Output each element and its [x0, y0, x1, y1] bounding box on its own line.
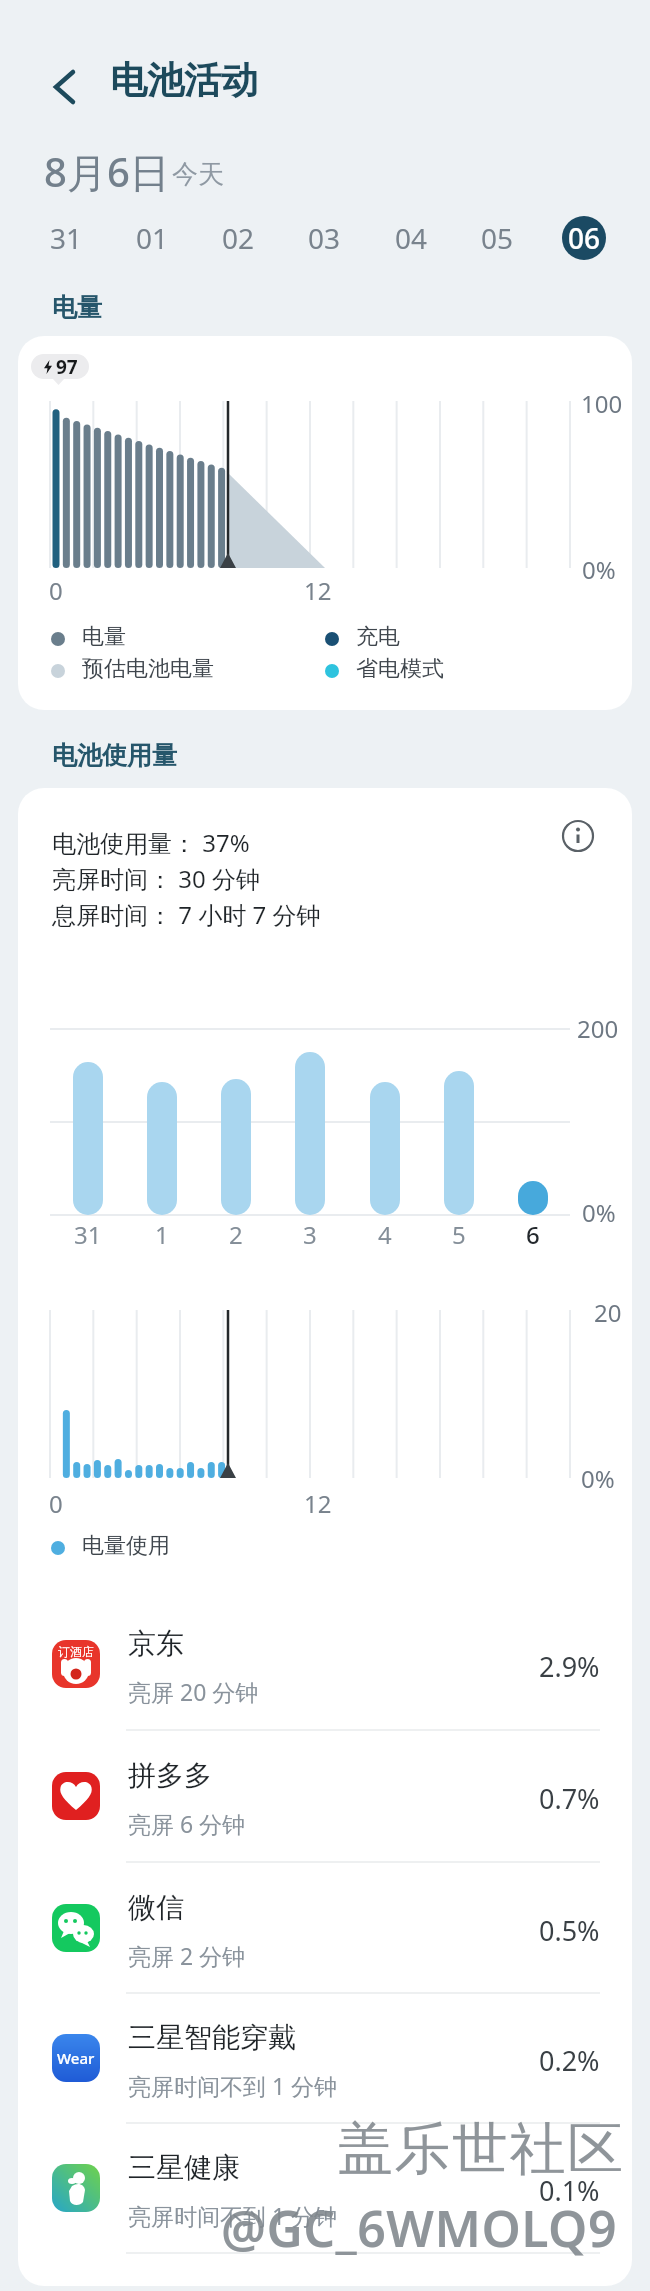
staticText: 12 — [304, 574, 332, 604]
staticText: 省电模式 — [356, 655, 444, 683]
staticText: 亮屏 2 分钟 — [128, 1940, 246, 1971]
staticText: 6 — [526, 1218, 540, 1248]
staticText: 盖乐世社区 — [337, 2114, 625, 2185]
staticText: 20 — [594, 1296, 622, 1326]
staticText: 31 — [50, 219, 83, 257]
staticText: 三星健康 — [128, 2150, 240, 2185]
staticText: 今天 — [172, 158, 224, 191]
staticText: 亮屏时间： 30 分钟 — [52, 862, 260, 895]
staticText: 亮屏时间不到 1 分钟 — [128, 2200, 338, 2231]
staticText: 电量使用 — [82, 1532, 170, 1560]
staticText: 97 — [56, 354, 78, 379]
staticText: 亮屏 20 分钟 — [128, 1676, 259, 1707]
staticText: 05 — [481, 219, 514, 257]
staticText: 31 — [74, 1218, 102, 1248]
button[interactable]: Wear — [18, 1993, 632, 2123]
staticText: 0% — [581, 1462, 615, 1492]
staticText: 12 — [304, 1487, 332, 1517]
staticText: 电池活动 — [110, 57, 258, 104]
staticText: 01 — [136, 219, 169, 257]
staticText: 0% — [582, 1196, 616, 1226]
staticText: 电池使用量 — [52, 740, 177, 771]
staticText: 0.7% — [539, 1780, 600, 1817]
button[interactable]: 02 — [212, 212, 264, 264]
staticText: 订酒店 — [58, 1644, 94, 1659]
staticText: Wear — [57, 2048, 95, 2068]
staticText: 0% — [582, 553, 616, 583]
staticText: 3 — [303, 1218, 317, 1248]
staticText: 充电 — [356, 623, 400, 651]
staticText: 8月6日 — [44, 144, 170, 199]
staticText: 100 — [581, 387, 623, 417]
button[interactable]: 06 — [562, 216, 606, 260]
button[interactable]: 三星健康 — [18, 2123, 632, 2253]
button[interactable]: 微信 — [18, 1863, 632, 1993]
staticText: 5 — [452, 1218, 466, 1248]
button[interactable]: 31 — [40, 212, 92, 264]
staticText: 2.9% — [539, 1648, 600, 1685]
button[interactable]: 01 — [126, 212, 178, 264]
staticText: 预估电池电量 — [82, 655, 214, 683]
button[interactable]: 03 — [298, 212, 350, 264]
staticText: 04 — [395, 219, 428, 257]
staticText: 0.5% — [539, 1912, 600, 1949]
staticText: 1 — [155, 1218, 169, 1248]
staticText: 06 — [568, 219, 601, 257]
staticText: 电量 — [52, 292, 102, 323]
button[interactable]: 订酒店 — [18, 1599, 632, 1729]
staticText: 微信 — [128, 1890, 184, 1925]
staticText: 0 — [49, 574, 63, 604]
button[interactable]: 04 — [385, 212, 437, 264]
staticText: 亮屏 6 分钟 — [128, 1808, 246, 1839]
staticText: @GC_6WMOLQ9 — [221, 2194, 618, 2262]
staticText: 2 — [229, 1218, 243, 1248]
staticText: 息屏时间： 7 小时 7 分钟 — [52, 898, 321, 931]
staticText: 电量 — [82, 623, 126, 651]
staticText: 电池使用量： 37% — [52, 826, 250, 859]
button[interactable] — [561, 819, 595, 853]
staticText: 200 — [577, 1012, 619, 1042]
button[interactable] — [40, 63, 88, 111]
staticText: 03 — [308, 219, 341, 257]
staticText: 0.1% — [539, 2172, 600, 2209]
staticText: 02 — [222, 219, 255, 257]
button[interactable]: 拼多多 — [18, 1731, 632, 1861]
staticText: 三星智能穿戴 — [128, 2020, 296, 2055]
staticText: 拼多多 — [128, 1758, 212, 1793]
staticText: 京东 — [128, 1626, 184, 1661]
staticText: 0.2% — [539, 2042, 600, 2079]
button[interactable]: 05 — [471, 212, 523, 264]
staticText: 4 — [378, 1218, 392, 1248]
staticText: 亮屏时间不到 1 分钟 — [128, 2070, 338, 2101]
staticText: 0 — [49, 1487, 63, 1517]
